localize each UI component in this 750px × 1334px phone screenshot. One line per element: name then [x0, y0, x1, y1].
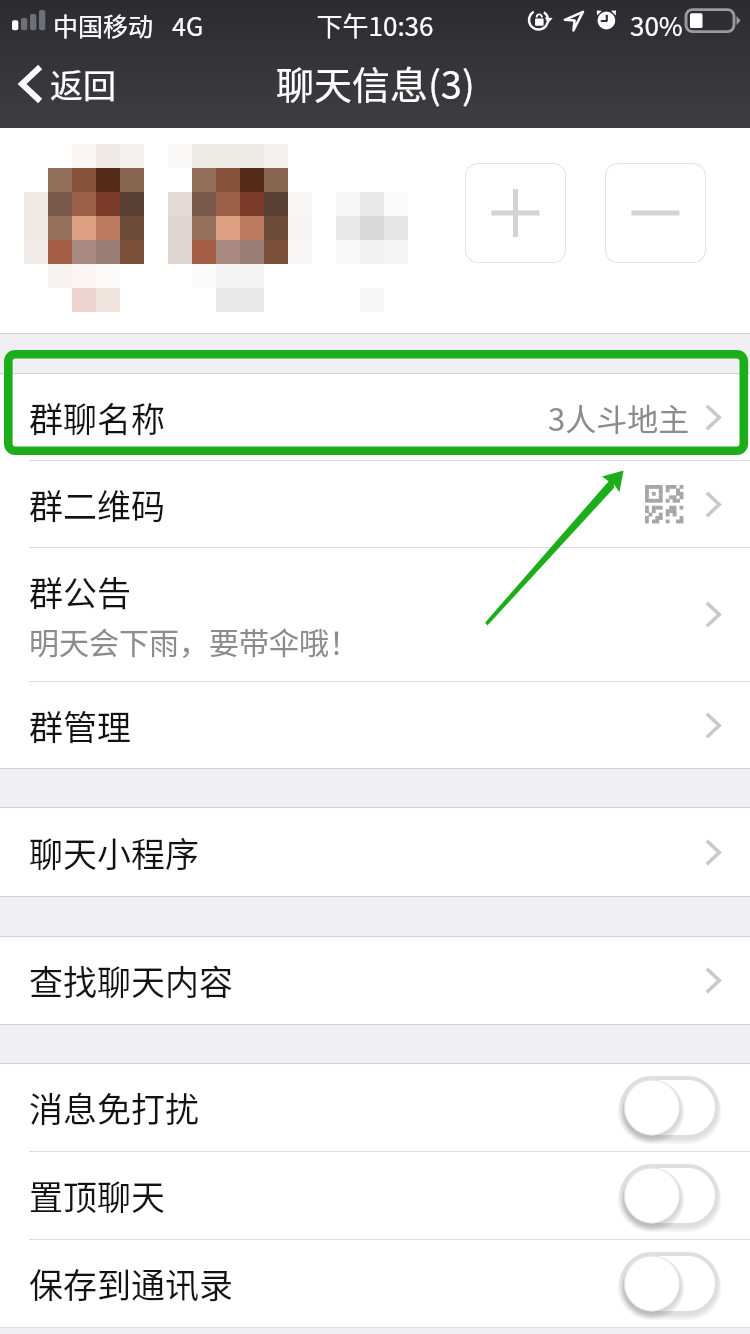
- button[interactable]: 返回: [0, 46, 134, 128]
- staticText: 查找聊天内容: [29, 956, 233, 1005]
- button[interactable]: 聊天小程序: [0, 808, 750, 896]
- staticText: 消息免打扰: [29, 1083, 199, 1132]
- staticText: 返回: [50, 60, 116, 108]
- button[interactable]: 添加成员: [465, 163, 566, 263]
- button[interactable]: 置顶聊天 开关: [620, 1164, 719, 1227]
- button[interactable]: 群管理: [0, 682, 750, 768]
- button[interactable]: 消息免打扰: [0, 1064, 750, 1151]
- staticText: 3人斗地主: [548, 395, 690, 440]
- button[interactable]: 置顶聊天: [0, 1152, 750, 1239]
- staticText: 保存到通讯录: [29, 1259, 233, 1308]
- staticText: 聊天信息(3): [276, 55, 475, 110]
- staticText: 置顶聊天: [29, 1171, 165, 1220]
- button[interactable]: 群聊名称: [0, 374, 750, 460]
- button[interactable]: 移除成员: [605, 163, 706, 263]
- staticText: 下午10:36: [0, 6, 750, 44]
- staticText: 群公告: [29, 567, 131, 616]
- staticText: 中国移动: [53, 7, 154, 43]
- staticText: 明天会下雨，要带伞哦！: [29, 619, 359, 662]
- staticText: 群聊名称: [29, 393, 165, 442]
- button[interactable]: 保存到通讯录 开关: [620, 1252, 719, 1315]
- button[interactable]: 查找聊天内容: [0, 937, 750, 1024]
- button[interactable]: 群二维码: [0, 461, 750, 547]
- button[interactable]: 保存到通讯录: [0, 1240, 750, 1327]
- button[interactable]: 消息免打扰 开关: [620, 1076, 719, 1139]
- button[interactable]: 群公告: [0, 548, 750, 681]
- staticText: 4G: [172, 7, 204, 43]
- staticText: 30%: [630, 6, 683, 44]
- staticText: 聊天小程序: [29, 828, 199, 877]
- staticText: 群二维码: [29, 480, 165, 529]
- staticText: 群管理: [29, 701, 131, 750]
